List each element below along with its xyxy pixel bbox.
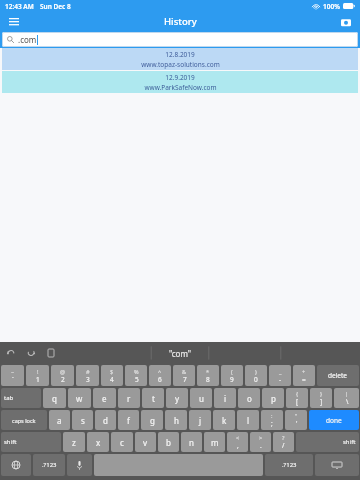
staticText: 4: [110, 375, 114, 384]
button[interactable]: n: [181, 432, 202, 452]
button[interactable]: h: [165, 410, 187, 430]
staticText: +: [302, 368, 306, 375]
staticText: &: [182, 368, 187, 375]
button[interactable]: &: [173, 365, 195, 386]
button[interactable]: .?123: [33, 454, 65, 476]
staticText: 12.8.2019: [165, 50, 195, 59]
button[interactable]: shift: [1, 432, 61, 452]
button[interactable]: Camera: [337, 13, 355, 31]
button[interactable]: ~: [1, 365, 24, 386]
button[interactable]: 12.9.2019: [2, 71, 358, 93]
button[interactable]: <: [227, 432, 248, 452]
button[interactable]: s: [72, 410, 93, 430]
button[interactable]: #: [76, 365, 99, 386]
button[interactable]: Voice input: [67, 454, 92, 476]
button[interactable]: r: [118, 388, 140, 408]
staticText: {: [296, 390, 299, 397]
button[interactable]: t: [142, 388, 164, 408]
button[interactable]: j: [189, 410, 211, 430]
button[interactable]: .?123: [265, 454, 313, 476]
button[interactable]: caps lock: [1, 410, 47, 430]
staticText: 7: [183, 375, 187, 384]
button[interactable]: v: [135, 432, 156, 452]
button[interactable]: shift: [296, 432, 359, 452]
staticText: g: [150, 415, 155, 426]
button[interactable]: p: [262, 388, 284, 408]
button[interactable]: Undo: [6, 348, 16, 358]
button[interactable]: _: [269, 365, 291, 386]
button[interactable]: Change keyboard language: [1, 454, 31, 476]
button[interactable]: Redo: [26, 348, 36, 358]
button[interactable]: delete: [317, 365, 359, 386]
button[interactable]: Paste: [46, 348, 56, 358]
button[interactable]: $: [101, 365, 123, 386]
button[interactable]: done: [309, 410, 359, 430]
staticText: z: [72, 437, 76, 448]
button[interactable]: ): [245, 365, 267, 386]
button[interactable]: d: [95, 410, 116, 430]
button[interactable]: !: [26, 365, 49, 386]
staticText: >: [259, 434, 263, 441]
staticText: d: [103, 415, 108, 426]
staticText: 100%: [323, 2, 340, 11]
staticText: w: [76, 393, 83, 404]
staticText: x: [96, 437, 101, 448]
button[interactable]: ": [285, 410, 307, 430]
button[interactable]: y: [166, 388, 188, 408]
button[interactable]: %: [125, 365, 147, 386]
button[interactable]: q: [43, 388, 66, 408]
button[interactable]: {: [286, 388, 308, 408]
staticText: @: [60, 368, 65, 375]
button[interactable]: >: [250, 432, 271, 452]
button[interactable]: e: [93, 388, 116, 408]
button[interactable]: "com": [155, 348, 206, 359]
button[interactable]: Menu: [5, 13, 23, 31]
button[interactable]: (: [221, 365, 243, 386]
button[interactable]: i: [214, 388, 236, 408]
button[interactable]: @: [51, 365, 74, 386]
button[interactable]: x: [87, 432, 109, 452]
button[interactable]: ?: [273, 432, 294, 452]
staticText: r: [127, 393, 131, 404]
button[interactable]: tab: [1, 388, 41, 408]
button[interactable]: ^: [149, 365, 171, 386]
staticText: ^: [158, 368, 162, 375]
button[interactable]: |: [334, 388, 359, 408]
button[interactable]: m: [204, 432, 225, 452]
button[interactable]: f: [118, 410, 139, 430]
staticText: ?: [282, 434, 285, 441]
button[interactable]: c: [111, 432, 133, 452]
button[interactable]: +: [293, 365, 315, 386]
staticText: \: [346, 397, 349, 406]
staticText: }: [320, 390, 323, 397]
button[interactable]: 12.8.2019: [2, 48, 358, 70]
staticText: -: [279, 375, 282, 384]
button[interactable]: *: [197, 365, 219, 386]
button[interactable]: }: [310, 388, 332, 408]
button[interactable]: w: [68, 388, 91, 408]
staticText: o: [247, 393, 252, 404]
staticText: m: [211, 437, 219, 448]
staticText: s: [81, 415, 85, 426]
button[interactable]: u: [190, 388, 212, 408]
button[interactable]: g: [141, 410, 163, 430]
button[interactable]: o: [238, 388, 260, 408]
staticText: ;: [271, 419, 273, 428]
staticText: !: [37, 368, 39, 375]
button[interactable]: a: [49, 410, 70, 430]
staticText: q: [52, 393, 57, 404]
button[interactable]: k: [213, 410, 235, 430]
button[interactable]: l: [237, 410, 259, 430]
button[interactable]: z: [63, 432, 85, 452]
staticText: shift: [4, 438, 17, 446]
staticText: %: [134, 368, 139, 375]
staticText: h: [174, 415, 179, 426]
staticText: 2: [61, 375, 65, 384]
button[interactable]: b: [158, 432, 179, 452]
staticText: 9: [230, 375, 234, 384]
button[interactable]: .com: [2, 32, 358, 47]
button[interactable]: Hide keyboard: [315, 454, 359, 476]
staticText: f: [127, 415, 130, 426]
button[interactable]: :: [261, 410, 283, 430]
